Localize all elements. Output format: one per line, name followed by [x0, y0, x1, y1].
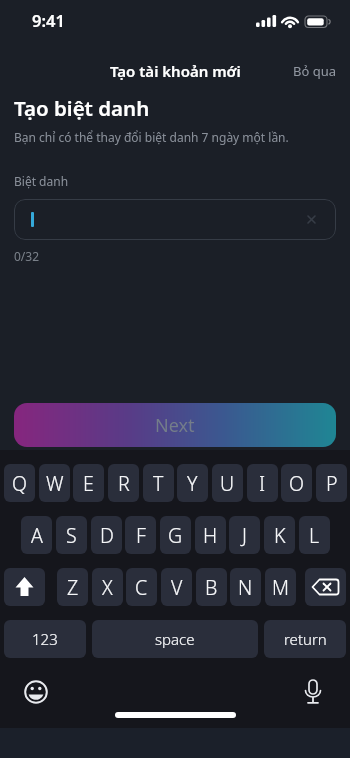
staticText: Q	[12, 470, 27, 497]
staticText: H	[203, 522, 218, 549]
staticText: R	[118, 470, 130, 497]
button[interactable]: K	[264, 516, 295, 554]
button[interactable]: C	[126, 568, 157, 606]
staticText: C	[135, 574, 148, 601]
button[interactable]	[22, 678, 50, 706]
button[interactable]: G	[160, 516, 191, 554]
button[interactable]: H	[195, 516, 226, 554]
staticText: T	[153, 470, 164, 497]
staticText: M	[272, 574, 290, 601]
staticText: J	[242, 522, 247, 549]
staticText: X	[102, 574, 113, 601]
staticText: S	[66, 522, 77, 549]
button[interactable]: T	[143, 464, 174, 502]
button[interactable]: B	[196, 568, 227, 606]
staticText: 123	[32, 629, 58, 649]
staticText: return	[284, 629, 327, 649]
button[interactable]: O	[281, 464, 312, 502]
staticText: E	[83, 470, 94, 497]
staticText: V	[171, 574, 183, 601]
button[interactable]: N	[230, 568, 261, 606]
staticText: K	[274, 522, 286, 549]
button[interactable]: Next	[14, 403, 336, 447]
staticText: Tạo biệt danh	[14, 94, 150, 122]
button[interactable]: S	[56, 516, 87, 554]
staticText: Next	[155, 413, 195, 438]
button[interactable]: L	[299, 516, 330, 554]
staticText: A	[31, 522, 43, 549]
button[interactable]: R	[108, 464, 139, 502]
staticText: L	[309, 522, 320, 549]
button[interactable]: Z	[57, 568, 88, 606]
button[interactable]: D	[91, 516, 122, 554]
staticText: Z	[67, 574, 79, 601]
staticText: Tạo tài khoản mới	[110, 61, 241, 81]
staticText: Biệt danh	[14, 173, 69, 189]
staticText: 9:41	[32, 9, 65, 31]
staticText: O	[289, 470, 304, 497]
button[interactable]: F	[125, 516, 156, 554]
button[interactable]	[305, 568, 346, 606]
button[interactable]: space	[92, 620, 258, 658]
button[interactable]: Bỏ qua	[290, 60, 340, 82]
button[interactable]: V	[161, 568, 192, 606]
staticText: D	[100, 522, 114, 549]
button[interactable]	[299, 676, 327, 708]
staticText: Bạn chỉ có thể thay đổi biệt danh 7 ngày…	[14, 129, 289, 145]
staticText: F	[136, 522, 146, 549]
staticText: U	[220, 470, 235, 497]
button[interactable]	[4, 568, 45, 606]
staticText: 0/32	[14, 248, 40, 264]
button[interactable]: A	[21, 516, 52, 554]
button[interactable]: 123	[4, 620, 86, 658]
staticText: P	[326, 470, 338, 497]
button[interactable]	[14, 199, 336, 240]
button[interactable]: I	[247, 464, 278, 502]
staticText: W	[46, 470, 64, 497]
button[interactable]: J	[229, 516, 260, 554]
staticText: N	[238, 574, 253, 601]
button[interactable]: U	[212, 464, 243, 502]
button[interactable]: M	[265, 568, 296, 606]
button[interactable]: W	[39, 464, 70, 502]
button[interactable]: X	[92, 568, 123, 606]
button[interactable]: Y	[177, 464, 208, 502]
button[interactable]: return	[264, 620, 346, 658]
button[interactable]: P	[316, 464, 347, 502]
staticText: G	[168, 522, 183, 549]
staticText: B	[205, 574, 218, 601]
staticText: Y	[187, 470, 198, 497]
button[interactable]: E	[73, 464, 104, 502]
staticText: space	[155, 629, 195, 649]
staticText: I	[259, 470, 266, 497]
button[interactable]: Q	[4, 464, 35, 502]
staticText: Bỏ qua	[293, 62, 337, 80]
